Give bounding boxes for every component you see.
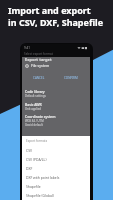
staticText: Shapefile [26, 184, 41, 189]
staticText: Basic AWR [25, 102, 42, 107]
staticText: Unit applied [25, 107, 41, 111]
staticText: CANCEL [33, 76, 45, 80]
button[interactable]: CANCEL [32, 75, 46, 81]
button[interactable]: Coordinate system [25, 114, 93, 127]
button[interactable]: DXF [22, 164, 90, 173]
button[interactable]: Select export format [24, 52, 53, 56]
staticText: CSV (PDA/LL) [26, 157, 47, 162]
staticText: Shapefile (Global) [26, 193, 54, 198]
staticText: File system [31, 63, 50, 68]
staticText: Geoid default [25, 123, 43, 127]
staticText: DXF with point labels [26, 175, 60, 180]
button[interactable]: Basic AWR [25, 102, 93, 111]
staticText: WGS 84 / UTM [25, 119, 44, 123]
staticText: 9:41 [24, 46, 30, 50]
button[interactable]: CSV [22, 146, 90, 155]
button[interactable]: CSV (PDA/LL) [22, 155, 90, 164]
staticText: Code library [25, 89, 45, 94]
staticText: Default settings [25, 94, 46, 98]
staticText: CSV [26, 148, 33, 153]
staticText: Coordinate system [25, 114, 56, 119]
button[interactable]: Code library [25, 89, 93, 98]
button[interactable]: Shapefile [22, 182, 90, 191]
staticText: Import and export [8, 4, 91, 16]
staticText: in CSV, DXF, Shapefile [8, 16, 104, 28]
button[interactable]: File system [25, 63, 50, 68]
staticText: CONFIRM [64, 76, 78, 80]
button[interactable]: Shapefile (Global) [22, 191, 90, 200]
button[interactable]: DXF with point labels [22, 173, 90, 182]
button[interactable]: CONFIRM [63, 75, 79, 81]
staticText: Select export format [24, 52, 53, 56]
staticText: Export formats [26, 139, 48, 143]
staticText: Export target [25, 57, 52, 62]
staticText: DXF [26, 166, 33, 171]
